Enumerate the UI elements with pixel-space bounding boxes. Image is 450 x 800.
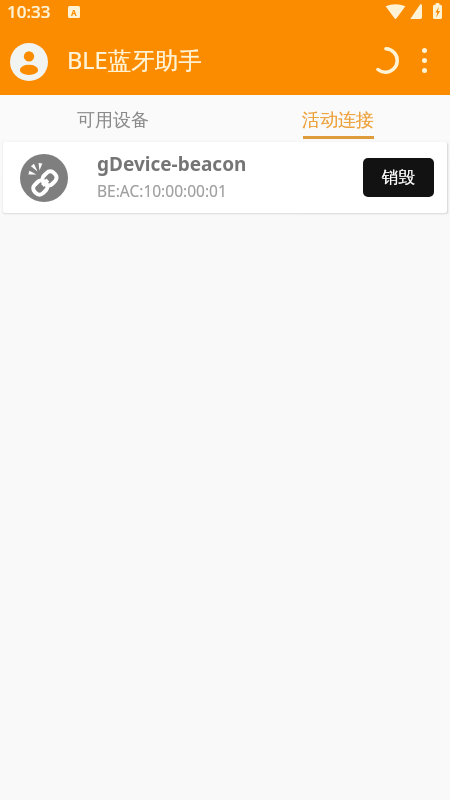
- button[interactable]: Account: [10, 43, 48, 81]
- button[interactable]: More options: [404, 40, 444, 80]
- staticText: 可用设备: [77, 109, 149, 132]
- staticText: 销毁: [382, 167, 415, 188]
- staticText: BLE蓝牙助手: [67, 44, 202, 76]
- staticText: gDevice-beacon: [97, 151, 247, 177]
- staticText: 10:33: [7, 0, 51, 23]
- button[interactable]: Scanning: [363, 38, 407, 82]
- button[interactable]: 活动连接: [225, 95, 450, 139]
- button[interactable]: 可用设备: [0, 95, 225, 139]
- staticText: A: [71, 7, 77, 18]
- staticText: BE:AC:10:00:00:01: [97, 180, 227, 201]
- button[interactable]: 销毁: [363, 158, 434, 197]
- button[interactable]: gDevice-beacon: [3, 142, 447, 213]
- staticText: 活动连接: [302, 109, 374, 132]
